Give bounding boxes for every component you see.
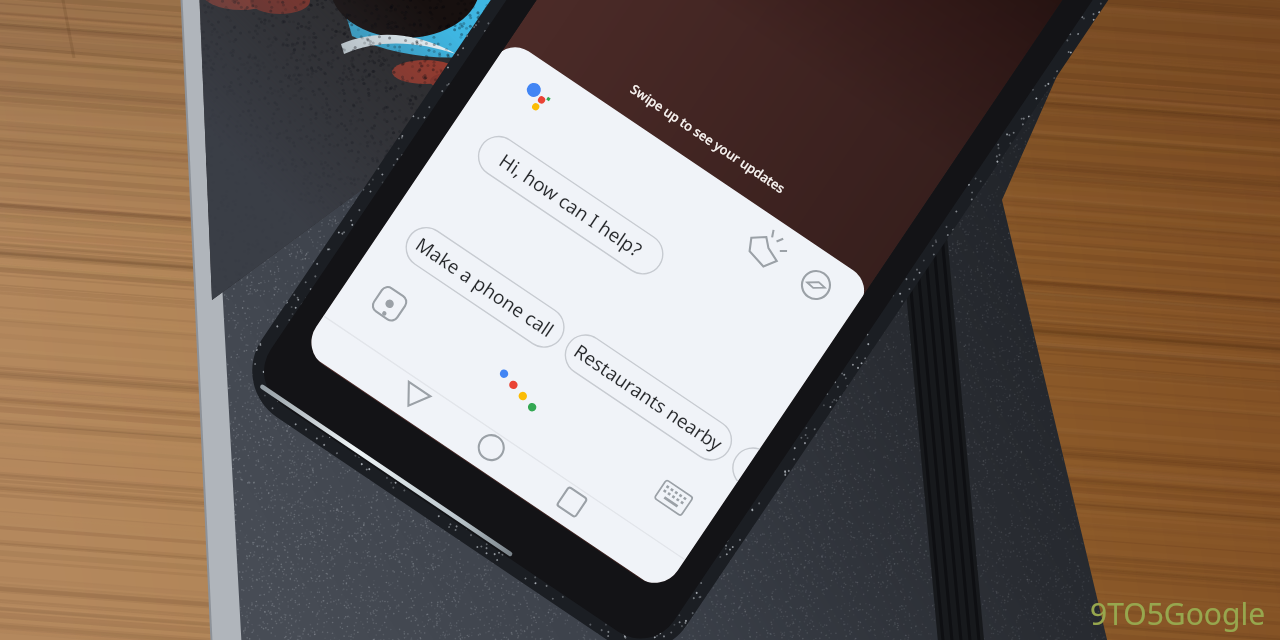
- button[interactable]: [0, 0, 1280, 640]
